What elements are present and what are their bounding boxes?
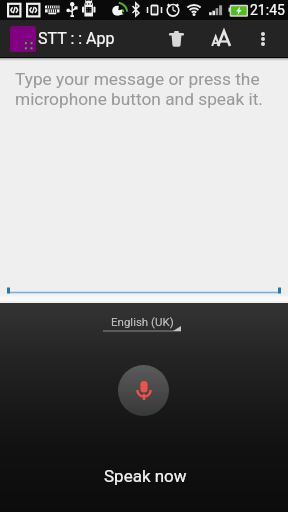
button[interactable]: More options xyxy=(248,20,277,57)
button[interactable]: English (UK) xyxy=(101,314,184,338)
button[interactable]: Text size xyxy=(199,20,243,57)
staticText: Speak now xyxy=(104,466,187,486)
button[interactable]: App icon xyxy=(10,26,36,52)
staticText: Type your message or press the microphon… xyxy=(15,69,268,110)
staticText: English (UK) xyxy=(111,315,174,328)
staticText: 21:45 xyxy=(250,2,285,18)
button[interactable]: Microphone xyxy=(118,365,169,416)
staticText: STT : : App xyxy=(38,29,115,48)
button[interactable]: Delete xyxy=(156,20,197,57)
